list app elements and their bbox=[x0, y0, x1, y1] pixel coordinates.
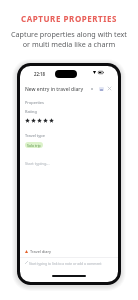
button[interactable]: Travel diary bbox=[25, 247, 52, 255]
staticText: 22:18 bbox=[34, 71, 46, 77]
staticText: Rating bbox=[25, 109, 37, 114]
staticText: Travel diary bbox=[30, 249, 52, 254]
staticText: CAPTURE PROPERTIES bbox=[21, 13, 117, 24]
staticText: Start typing... bbox=[25, 161, 50, 166]
staticText: Solo trip bbox=[27, 143, 41, 148]
staticText: Capture properties along with text or mu… bbox=[11, 29, 127, 49]
button[interactable]: Solo trip bbox=[25, 142, 43, 148]
other: Write bbox=[25, 261, 28, 264]
staticText: New entry in travel diary bbox=[25, 86, 84, 93]
staticText: Properties bbox=[25, 100, 44, 105]
staticText: Travel type bbox=[25, 133, 45, 138]
staticText: Start typing to link to a note or add a … bbox=[29, 261, 102, 265]
button[interactable]: Close bbox=[107, 86, 112, 91]
button[interactable]: Attachment bbox=[99, 87, 104, 91]
